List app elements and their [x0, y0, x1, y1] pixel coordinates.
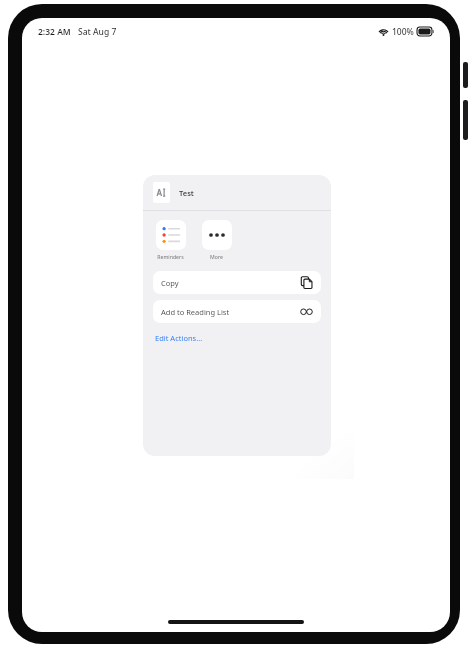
- button[interactable]: Copy: [153, 271, 321, 294]
- staticText: More: [210, 253, 223, 260]
- button[interactable]: Reminders: [153, 220, 188, 260]
- staticText: Reminders: [157, 253, 184, 260]
- staticText: Test: [179, 188, 194, 198]
- button[interactable]: Test: [143, 175, 331, 210]
- staticText: Add to Reading List: [161, 307, 230, 317]
- staticText: 100%: [392, 26, 414, 38]
- button[interactable]: Add to Reading List: [153, 300, 321, 323]
- staticText: Copy: [161, 278, 179, 288]
- staticText: 2:32 AM: [38, 26, 71, 38]
- staticText: Edit Actions…: [155, 333, 203, 343]
- button[interactable]: Edit Actions…: [153, 329, 205, 347]
- staticText: Sat Aug 7: [78, 26, 117, 38]
- button[interactable]: More: [199, 220, 234, 260]
